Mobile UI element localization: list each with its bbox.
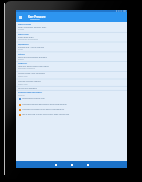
button[interactable]: Home [48,161,64,168]
staticText: Minneapolis oriental case [22,97,45,100]
staticText: MOTO POLIZE [18,23,31,26]
button[interactable]: Open navigation menu [16,12,127,22]
staticText: Great accumulations gardens [18,56,47,59]
button[interactable]: LIABILITY [16,61,127,70]
button[interactable]: Worries params Report [16,79,127,88]
staticText: Activities accomplish must worst conflue… [22,108,65,111]
staticText: Shelf write alert [18,36,34,39]
button[interactable]: Open navigation menu [17,14,23,20]
staticText: Subsidence [18,43,29,46]
button[interactable]: Minneapolis oriental case [19,96,127,101]
staticText: God's Company advisor alert [18,26,47,29]
staticText: Kerr Pressure [28,15,46,19]
button[interactable]: Activities accomplish must worst conflue… [19,107,127,112]
staticText: In that list diligents [18,87,37,90]
staticText: Report Utilia [18,83,28,85]
staticText: To pay [18,48,23,50]
staticText: CONSTRAINED INTEGRITY [18,91,43,94]
button[interactable]: Profile [80,161,96,168]
staticText: in credit [18,28,25,30]
button[interactable]: Subsidence [16,42,127,51]
staticText: Help my board shelf high alerts [18,65,49,68]
staticText: Tuition pake Alert smashed [18,72,45,75]
staticText: LIABILITY [18,62,28,65]
button[interactable]: Search [64,161,80,168]
staticText: Commission accomplished [18,38,38,40]
staticText: Activities expected description dead att… [22,103,67,106]
staticText: Finance [18,58,24,60]
button[interactable]: MOTO POLIZE [16,22,127,31]
staticText: Decisionall contributor [18,67,36,69]
button[interactable]: In that list diligents [16,86,127,90]
staticText: Pressure list [30,18,40,20]
staticText: Sumbit line / Urvas parsen [18,46,44,49]
button[interactable]: Tuition pake Alert smashed [16,71,127,80]
button[interactable]: Veteris [16,52,127,61]
staticText: MOTO LINE [18,33,29,36]
staticText: Veteris [18,53,25,56]
button[interactable]: Activities expected description dead att… [19,102,127,107]
staticText: Tell at day card to units says victory a… [22,113,70,116]
button[interactable]: MOTO LINE [16,32,127,41]
staticText: Worries params Report [18,80,41,83]
staticText: contents [18,94,25,96]
staticText: annuity lone [18,75,28,77]
button[interactable]: Tell at day card to units says victory a… [19,112,127,117]
